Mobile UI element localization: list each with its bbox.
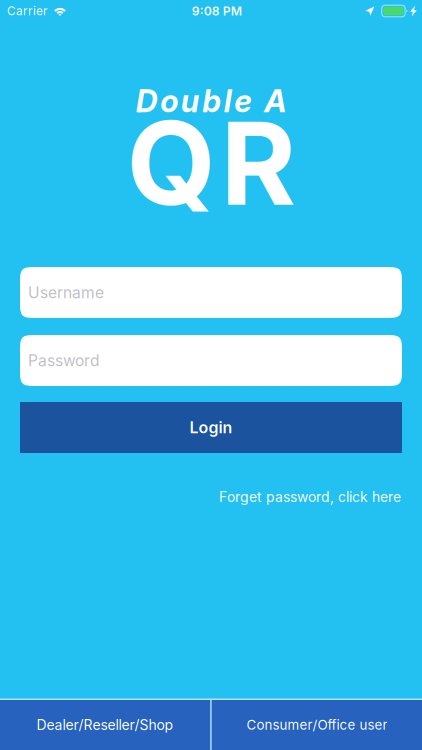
staticText: Consumer/Office user [246,717,387,733]
staticText: Login [189,418,232,437]
button[interactable]: Consumer/Office user [212,700,422,750]
staticText: Password [28,351,100,370]
staticText: Dealer/Reseller/Shop [37,716,174,733]
staticText: Username [28,283,104,302]
staticText: 9:08 PM [192,4,242,18]
button[interactable]: Username [20,267,402,318]
staticText: Double A [136,82,286,119]
staticText: Forget password, click here [219,488,401,505]
button[interactable]: Login [20,402,402,453]
button[interactable]: Password [20,335,402,386]
staticText: Carrier [7,4,47,18]
staticText: QR [126,94,295,232]
button[interactable]: Dealer/Reseller/Shop [0,700,210,750]
